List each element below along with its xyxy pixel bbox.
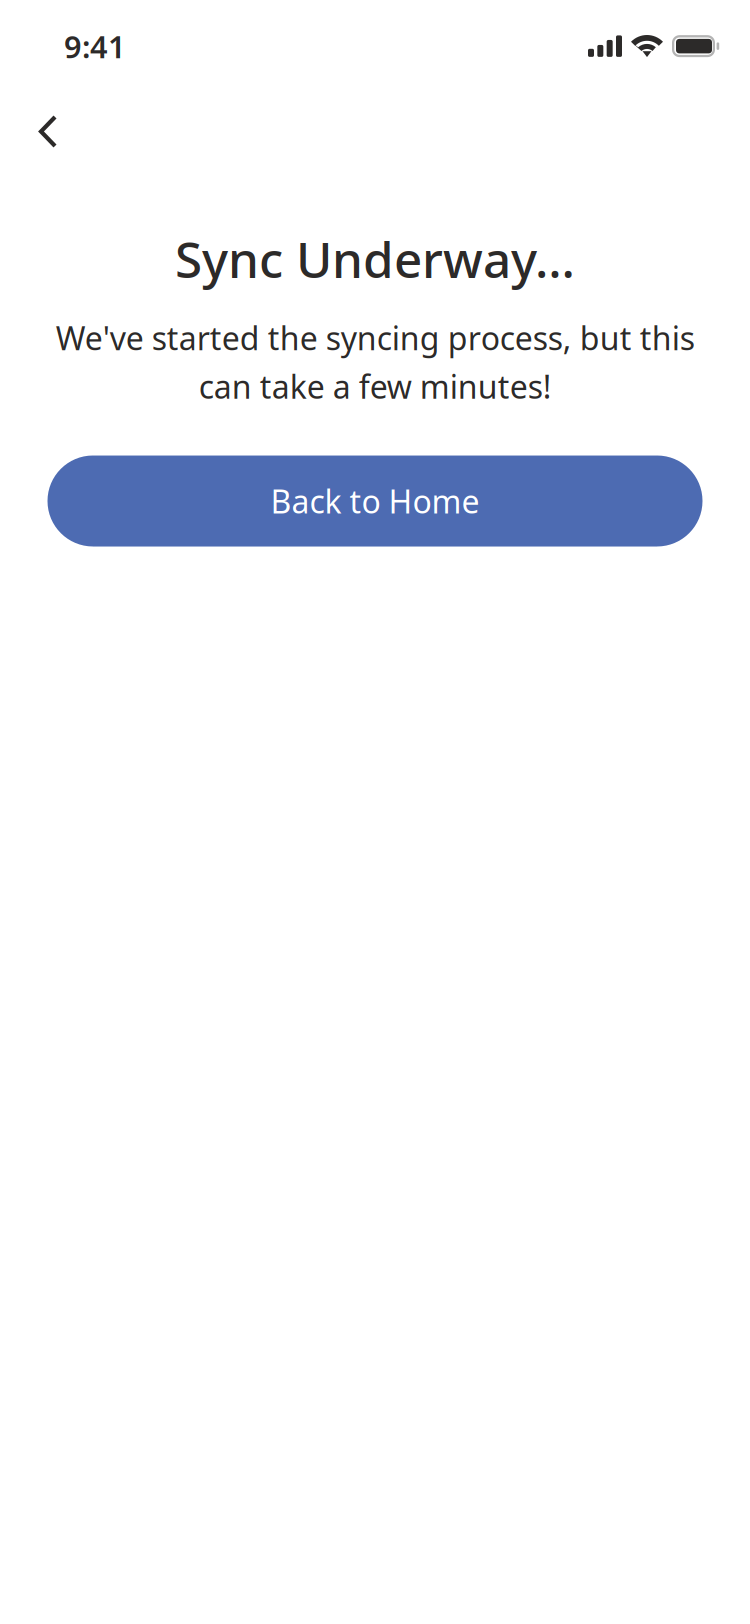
staticText: Sync Underway… [175, 226, 575, 291]
button[interactable]: Back [4, 89, 92, 174]
staticText: We've started the syncing process, but t… [55, 316, 694, 407]
staticText: Back to Home [270, 480, 479, 522]
button[interactable]: Back to Home [47, 455, 702, 546]
staticText: 9:41 [64, 26, 126, 67]
